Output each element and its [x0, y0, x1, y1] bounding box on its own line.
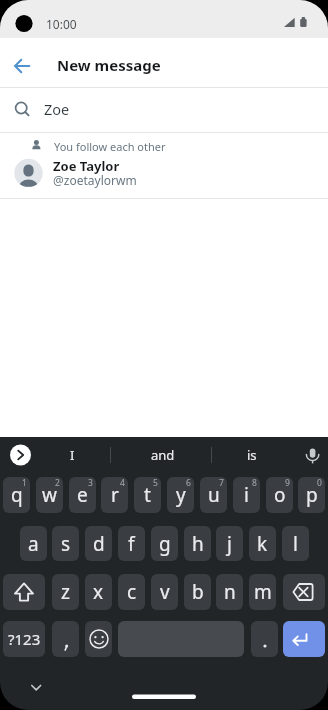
staticText: 4 [120, 477, 125, 489]
staticText: You follow each other [54, 139, 166, 154]
staticText: 1 [22, 477, 27, 489]
staticText: v [160, 579, 170, 605]
staticText: ?123 [8, 629, 41, 649]
staticText: m [254, 579, 272, 605]
staticText: u [208, 482, 220, 508]
staticText: I [70, 446, 75, 464]
staticText: 6 [186, 477, 191, 489]
staticText: h [192, 531, 204, 557]
staticText: x [93, 579, 104, 605]
staticText: 9 [285, 477, 290, 489]
staticText: c [127, 579, 137, 605]
staticText: s [61, 531, 71, 557]
staticText: a [28, 531, 39, 557]
staticText: @zoetaylorwm [53, 172, 137, 188]
staticText: is [247, 446, 257, 464]
staticText: p [306, 482, 318, 508]
staticText: f [128, 531, 135, 557]
staticText: n [224, 579, 236, 605]
staticText: New message [57, 55, 161, 75]
staticText: 0 [317, 477, 322, 489]
staticText: 2 [55, 477, 60, 489]
staticText: z [61, 579, 70, 605]
staticText: e [77, 482, 88, 508]
staticText: 10:00 [46, 16, 77, 32]
staticText: i [244, 482, 249, 508]
staticText: l [293, 531, 298, 557]
staticText: Zoe [44, 99, 70, 119]
staticText: 5 [153, 477, 158, 489]
staticText: 8 [252, 477, 257, 489]
staticText: j [227, 531, 232, 557]
staticText: 3 [88, 477, 93, 489]
staticText: y [176, 482, 186, 508]
staticText: 7 [219, 477, 224, 489]
staticText: o [274, 482, 286, 508]
staticText: r [111, 482, 119, 508]
staticText: w [42, 482, 57, 508]
staticText: q [11, 482, 23, 508]
staticText: Zoe Taylor [53, 157, 120, 175]
staticText: d [93, 531, 105, 557]
staticText: g [159, 531, 171, 557]
staticText: and [151, 446, 175, 464]
staticText: k [257, 531, 268, 557]
staticText: b [192, 579, 204, 605]
staticText: t [144, 482, 151, 508]
